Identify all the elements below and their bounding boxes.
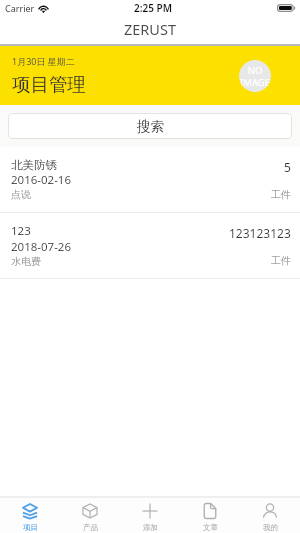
staticText: 123 (11, 223, 31, 239)
staticText: 2016-02-16 (11, 172, 72, 188)
button[interactable]: 添加 (120, 498, 180, 533)
staticText: 项目 (23, 523, 38, 532)
staticText: 添加 (143, 523, 158, 532)
staticText: 2018-07-26 (11, 239, 72, 255)
staticText: 工件 (271, 254, 291, 267)
staticText: 123123123 (229, 225, 291, 241)
button[interactable]: 我的 (240, 498, 300, 533)
staticText: 文章 (203, 523, 218, 532)
staticText: 我的 (263, 523, 278, 532)
button[interactable]: 项目 (0, 498, 60, 533)
button[interactable]: 北美防锈 (0, 147, 300, 212)
staticText: 点说 (11, 188, 31, 201)
staticText: 项目管理 (12, 73, 86, 96)
button[interactable]: 搜索 (8, 113, 292, 139)
staticText: NO IMAGE (240, 64, 270, 88)
staticText: 工件 (271, 188, 291, 201)
button[interactable]: 123 (0, 213, 300, 278)
button[interactable]: 产品 (60, 498, 120, 533)
button[interactable]: 文章 (180, 498, 240, 533)
staticText: 5 (284, 159, 291, 175)
staticText: ZERUST (124, 19, 176, 39)
staticText: Carrier (5, 2, 35, 14)
staticText: 搜索 (137, 118, 164, 135)
staticText: 北美防锈 (11, 158, 57, 172)
staticText: 水电费 (11, 255, 41, 268)
staticText: 产品 (83, 523, 98, 532)
staticText: 2:25 PM (134, 1, 172, 15)
staticText: 1月30日 星期二 (12, 55, 75, 67)
